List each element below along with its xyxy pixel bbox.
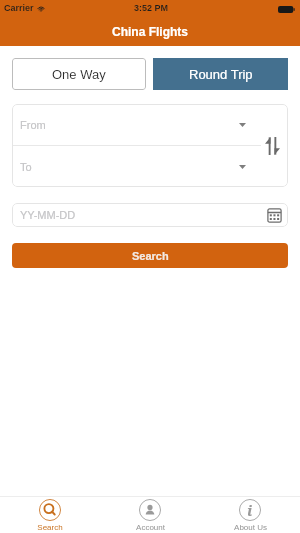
- button[interactable]: Swap origin and destination: [262, 133, 282, 159]
- button[interactable]: From: [12, 104, 288, 145]
- staticText: Search: [37, 523, 63, 532]
- staticText: Carrier: [4, 3, 34, 13]
- staticText: China Flights: [112, 25, 188, 38]
- staticText: About Us: [234, 523, 267, 532]
- button[interactable]: To: [12, 146, 288, 187]
- button[interactable]: i: [200, 497, 300, 533]
- staticText: i: [247, 500, 253, 520]
- staticText: To: [20, 161, 32, 173]
- staticText: Round Trip: [189, 67, 253, 82]
- staticText: From: [20, 119, 46, 131]
- staticText: One Way: [52, 67, 106, 82]
- button[interactable]: YY-MM-DD: [12, 203, 288, 227]
- staticText: Account: [136, 523, 165, 532]
- button[interactable]: Search: [0, 497, 100, 533]
- staticText: 3:52 PM: [134, 3, 169, 13]
- staticText: YY-MM-DD: [20, 209, 76, 221]
- button[interactable]: Account: [100, 497, 200, 533]
- button[interactable]: Search: [12, 243, 288, 268]
- staticText: Search: [132, 250, 169, 262]
- button[interactable]: One Way: [12, 58, 146, 90]
- button[interactable]: Round Trip: [153, 58, 288, 90]
